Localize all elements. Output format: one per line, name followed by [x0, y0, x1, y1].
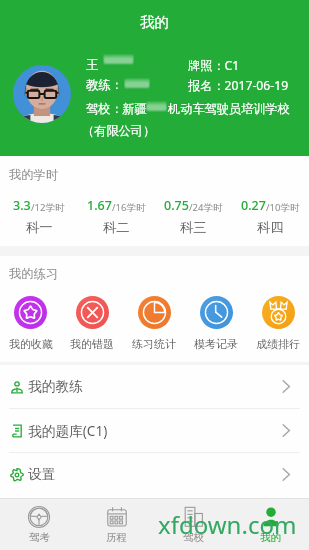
staticText: 科一	[26, 219, 53, 236]
button[interactable]: 历程	[78, 499, 155, 550]
staticText: 我的练习	[9, 266, 59, 281]
staticText: 我的	[140, 13, 169, 31]
staticText: 科二	[103, 219, 130, 236]
staticText: xfdown.com	[158, 508, 297, 541]
button[interactable]: 驾校	[155, 499, 232, 550]
staticText: 我的学时	[9, 167, 59, 182]
staticText: /16学时	[112, 201, 146, 214]
staticText: 科四	[257, 219, 284, 236]
staticText: 教练：	[86, 77, 123, 92]
staticText: 练习统计	[132, 337, 176, 351]
button[interactable]: 0.27	[232, 197, 309, 236]
staticText: 我的错题	[70, 337, 114, 351]
button[interactable]: 我的教练	[0, 365, 309, 408]
staticText: （有限公司）	[82, 123, 156, 138]
staticText: /10学时	[266, 201, 300, 214]
staticText: /24学时	[189, 201, 223, 214]
staticText: 科三	[180, 219, 207, 236]
button[interactable]: 模考记录	[185, 296, 247, 351]
button[interactable]: 练习统计	[123, 296, 185, 351]
button[interactable]: 我的	[232, 499, 309, 550]
button[interactable]: 0.75	[155, 197, 232, 236]
staticText: 历程	[106, 531, 127, 544]
staticText: 3.3	[13, 197, 31, 214]
staticText: 0.27	[241, 197, 266, 214]
button[interactable]: 3.3	[0, 197, 78, 236]
button[interactable]: 我的错题	[61, 296, 123, 351]
button[interactable]: 驾考	[0, 499, 78, 550]
staticText: 报名：2017-06-19	[188, 77, 289, 94]
button[interactable]: 我的收藏	[0, 296, 61, 351]
staticText: 驾考	[29, 531, 50, 544]
staticText: 1.67	[87, 197, 112, 214]
staticText: 设置	[28, 466, 56, 483]
staticText: 王	[86, 57, 99, 72]
staticText: 我的	[260, 531, 281, 544]
staticText: 成绩排行	[256, 337, 300, 351]
staticText: 模考记录	[194, 337, 238, 351]
staticText: 0.75	[164, 197, 189, 214]
staticText: 驾校	[183, 531, 204, 544]
staticText: 我的题库(C1)	[28, 421, 108, 440]
button[interactable]: 我的题库(C1)	[0, 409, 309, 452]
button[interactable]: 设置	[0, 453, 309, 496]
staticText: 我的教练	[28, 378, 83, 395]
button[interactable]: 成绩排行	[247, 296, 309, 351]
staticText: 牌照：C1	[188, 57, 240, 74]
staticText: 驾校：新疆	[86, 101, 147, 116]
staticText: 我的收藏	[9, 337, 53, 351]
staticText: /12学时	[31, 201, 65, 214]
button[interactable]: 1.67	[78, 197, 155, 236]
staticText: 机动车驾驶员培训学校	[168, 101, 290, 116]
